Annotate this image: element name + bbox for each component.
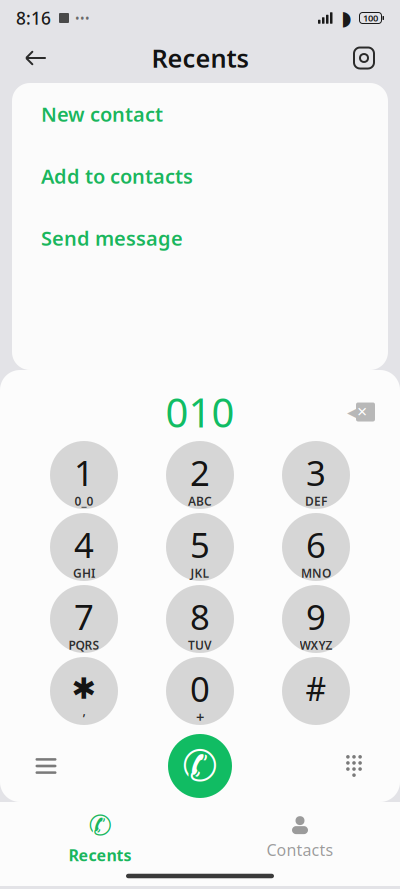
staticText: 1 [74,449,94,495]
staticText: 4 [74,521,94,567]
staticText: ✆ [88,810,111,841]
button[interactable]: Hide keypad [316,734,392,798]
staticText: ABC [188,493,212,509]
button[interactable]: 5 [166,512,234,582]
staticText: , [82,703,85,719]
staticText: 9 [306,593,326,639]
button[interactable]: 1 [50,440,118,510]
button[interactable]: Add to contacts [12,145,388,207]
staticText: 3 [306,449,326,495]
button[interactable]: # [282,656,350,726]
staticText: 0 [190,665,210,711]
staticText: Contacts [266,839,333,860]
button[interactable]: Delete [332,390,386,434]
button[interactable]: More options [8,734,84,798]
button[interactable]: Call [168,734,232,798]
button[interactable]: ✱ [50,656,118,726]
staticText: Recents [151,41,248,75]
staticText: TUV [188,637,212,653]
button[interactable]: New contact [12,83,388,145]
button[interactable]: ✆ [0,813,200,863]
staticText: New contact [41,101,163,127]
staticText: DEF [305,493,327,509]
staticText: 010 [165,385,234,438]
staticText: ••• [75,10,90,26]
staticText: Add to contacts [41,163,193,189]
staticText: 5 [190,521,210,567]
staticText: Recents [68,844,131,866]
staticText: ✱ [71,672,96,705]
staticText: 2 [190,449,210,495]
staticText: GHI [73,565,95,581]
staticText: 100 [363,12,378,24]
staticText: 0_0 [74,493,93,509]
button[interactable]: Contacts [200,813,400,863]
button[interactable]: 8 [166,584,234,654]
button[interactable]: Settings [342,36,386,80]
button[interactable]: 9 [282,584,350,654]
staticText: 6 [306,521,326,567]
staticText: Send message [41,225,183,251]
staticText: ✕ [356,404,367,419]
staticText: 7 [74,593,94,639]
staticText: JKL [190,565,209,581]
button[interactable]: 0 [166,656,234,726]
staticText: ✆ [182,742,218,790]
staticText: 8:16 [16,6,51,29]
staticText: + [196,707,204,727]
button[interactable]: Back [14,36,58,80]
staticText: MNO [301,565,331,581]
staticText: WXYZ [299,637,332,653]
button[interactable]: 7 [50,584,118,654]
button[interactable]: 2 [166,440,234,510]
button[interactable]: 6 [282,512,350,582]
button[interactable]: Send message [12,207,388,269]
staticText: # [305,667,326,710]
staticText: ◗ [341,7,352,29]
staticText: PQRS [68,637,99,653]
staticText: 8 [190,593,210,639]
staticText: ◀ [347,402,360,422]
button[interactable]: 4 [50,512,118,582]
button[interactable]: 3 [282,440,350,510]
